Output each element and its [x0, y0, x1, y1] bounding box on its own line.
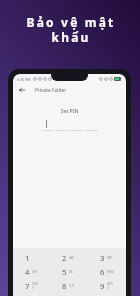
staticText: 1 [25, 253, 30, 263]
button[interactable]: 1 [13, 251, 50, 265]
button[interactable]: 7 [13, 279, 50, 293]
staticText: JKL [69, 270, 73, 274]
staticText: ABC [69, 256, 75, 260]
button[interactable]: 5 [50, 265, 88, 279]
button[interactable]: 2 [50, 251, 88, 265]
staticText: PQRS [32, 282, 39, 290]
staticText: 5 [62, 267, 67, 277]
staticText: 9 [100, 281, 105, 291]
staticText: MNO [107, 270, 114, 274]
button[interactable]: 3 [88, 251, 126, 265]
staticText: GHI [32, 270, 38, 274]
staticText: 6 [100, 267, 105, 277]
button[interactable]: 6 [88, 265, 126, 279]
button[interactable]: Back [15, 83, 29, 97]
button[interactable]: 4 [13, 265, 50, 279]
staticText: WXYZ [107, 282, 114, 290]
staticText: 2 [62, 253, 67, 263]
staticText: Bảo vệ mật khẩu [10, 14, 132, 45]
staticText: TUV [69, 284, 75, 288]
staticText: DEF [107, 256, 113, 260]
staticText: 7 [25, 281, 30, 291]
staticText: 6:35 PM [17, 77, 31, 82]
staticText: 4 [25, 267, 30, 277]
staticText: Set PIN [13, 108, 126, 115]
staticText: Private Folder [35, 87, 67, 94]
staticText: 8 [62, 281, 67, 291]
button[interactable]: 9 [88, 279, 126, 293]
staticText: 3 [100, 253, 105, 263]
button[interactable]: 8 [50, 279, 88, 293]
